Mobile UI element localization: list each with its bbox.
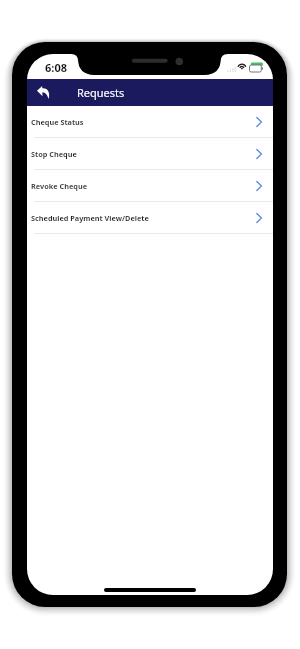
button[interactable]: Cheque Status <box>27 106 273 138</box>
staticText: Scheduled Payment View/Delete <box>31 213 149 223</box>
staticText: Cheque Status <box>31 117 84 127</box>
staticText: 6:08 <box>45 60 67 75</box>
staticText: Requests <box>77 85 125 100</box>
button[interactable]: Scheduled Payment View/Delete <box>27 202 273 234</box>
button[interactable]: Stop Cheque <box>27 138 273 170</box>
staticText: Revoke Cheque <box>31 181 87 191</box>
button[interactable]: Back <box>31 79 53 105</box>
staticText: Stop Cheque <box>31 149 77 159</box>
button[interactable]: Revoke Cheque <box>27 170 273 202</box>
